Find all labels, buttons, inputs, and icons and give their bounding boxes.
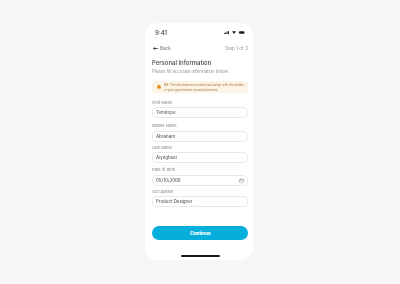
staticText: Personal Information bbox=[152, 59, 212, 66]
staticText: Aiyegbusi bbox=[156, 155, 177, 160]
staticText: Last Name bbox=[152, 145, 172, 150]
staticText: Continue bbox=[190, 230, 211, 236]
staticText: Occupation bbox=[152, 189, 174, 194]
staticText: Back bbox=[160, 46, 171, 52]
staticText: Please fill accurate information below. bbox=[152, 69, 229, 74]
staticText: Date of Birth bbox=[152, 167, 176, 172]
button[interactable]: Back bbox=[153, 44, 171, 53]
button[interactable]: Abraham bbox=[152, 131, 248, 142]
staticText: 9:41 bbox=[155, 29, 168, 36]
button[interactable]: Aiyegbusi bbox=[152, 152, 248, 163]
staticText: NB: The information provided must align … bbox=[164, 83, 244, 91]
button[interactable]: Product Designer bbox=[152, 196, 248, 207]
button[interactable]: Temitope bbox=[152, 107, 248, 118]
button[interactable]: 05/10/2009 bbox=[152, 175, 248, 186]
staticText: Middle Name bbox=[152, 123, 177, 128]
staticText: Temitope bbox=[156, 110, 176, 115]
staticText: Abraham bbox=[156, 134, 176, 139]
staticText: 05/10/2009 bbox=[156, 178, 181, 183]
other: Pick date bbox=[239, 178, 244, 183]
button[interactable]: Continue bbox=[152, 226, 248, 240]
staticText: Step 1 of 3 bbox=[225, 46, 248, 52]
staticText: Product Designer bbox=[156, 199, 193, 204]
staticText: First Name bbox=[152, 100, 173, 105]
